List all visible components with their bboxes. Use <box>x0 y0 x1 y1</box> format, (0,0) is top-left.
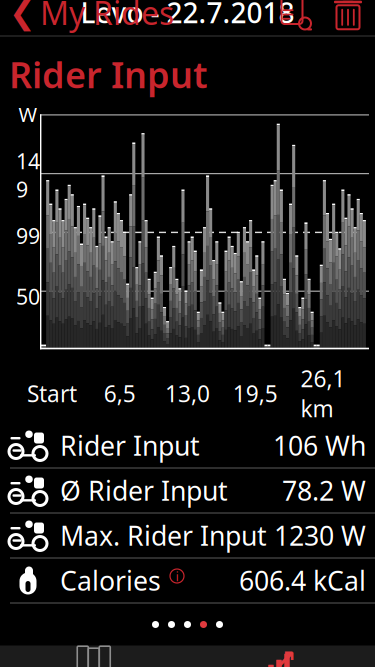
staticText: Rider Input <box>60 428 200 463</box>
staticText: Levo - 22.7.2018 <box>80 0 294 31</box>
staticText: Rider Input <box>9 50 208 98</box>
staticText: W <box>18 101 37 128</box>
staticText: Max. Rider Input <box>60 518 267 553</box>
button[interactable]: Rider Input <box>0 423 375 468</box>
staticText: 19,5 <box>233 378 278 408</box>
staticText: 1230 W <box>274 518 366 553</box>
staticText: 50 <box>16 282 40 311</box>
staticText: 606.4 kCal <box>239 563 366 598</box>
staticText: Calories <box>60 563 161 598</box>
staticText: ↗ <box>274 645 296 667</box>
button[interactable]: Ø Rider Input <box>0 468 375 513</box>
button[interactable]: Ride details <box>279 0 311 29</box>
staticText: 149 <box>16 147 40 203</box>
staticText: 99 <box>16 222 40 250</box>
staticText: 78.2 W <box>282 473 366 508</box>
staticText: 13,0 <box>165 378 210 408</box>
staticText: Start <box>27 378 77 408</box>
staticText: My Rides <box>40 0 174 34</box>
button[interactable]: Calories <box>0 558 375 603</box>
staticText: i <box>175 567 178 585</box>
staticText: 106 Wh <box>273 428 366 463</box>
staticText: Ø Rider Input <box>60 473 228 508</box>
staticText: 6,5 <box>104 378 136 408</box>
button[interactable]: Delete ride <box>333 0 363 29</box>
button[interactable]: ↗ <box>187 645 375 667</box>
button[interactable]: ❮ <box>0 0 174 40</box>
staticText: ❮ <box>9 0 36 31</box>
button[interactable]: Max. Rider Input <box>0 513 375 558</box>
button[interactable]: Map preview <box>0 645 187 667</box>
staticText: 26,1 km <box>301 363 346 423</box>
